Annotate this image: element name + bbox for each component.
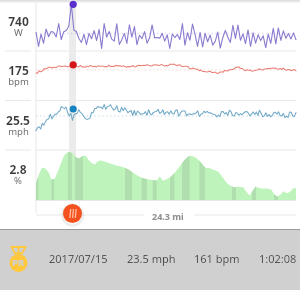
- staticText: mph: [8, 125, 29, 138]
- staticText: 740: [8, 13, 29, 29]
- staticText: 25.5: [6, 112, 30, 128]
- button[interactable]: Scrub position: [63, 204, 82, 223]
- staticText: 175: [8, 62, 29, 78]
- staticText: 2017/07/15: [49, 251, 108, 266]
- button[interactable]: Personal record: [10, 246, 27, 272]
- staticText: 1:02:08: [259, 251, 297, 266]
- staticText: bpm: [8, 75, 29, 88]
- staticText: 161 bpm: [194, 251, 240, 266]
- staticText: %: [14, 174, 22, 187]
- staticText: 23.5 mph: [127, 251, 176, 266]
- staticText: 2.8: [9, 161, 27, 177]
- staticText: W: [14, 26, 23, 39]
- staticText: 24.3 mi: [152, 210, 184, 222]
- staticText: PR: [12, 256, 25, 269]
